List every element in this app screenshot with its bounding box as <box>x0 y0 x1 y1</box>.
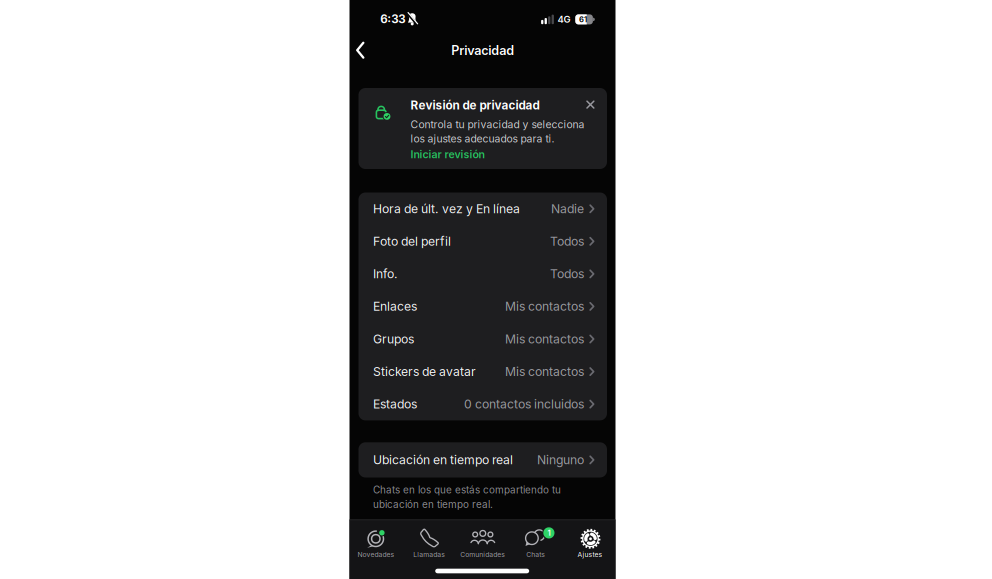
staticText: 61 <box>579 15 587 24</box>
button[interactable]: Grupos <box>358 323 607 355</box>
staticText: 6:33 <box>380 12 405 26</box>
button[interactable]: Llamadas <box>403 524 456 568</box>
staticText: Todos <box>550 234 584 249</box>
button[interactable]: Foto del perfil <box>358 225 607 258</box>
staticText: Grupos <box>373 332 414 346</box>
staticText: 1 <box>547 529 550 538</box>
staticText: Mis contactos <box>505 332 584 346</box>
button[interactable]: Enlaces <box>358 290 607 323</box>
staticText: Privacidad <box>451 43 514 58</box>
button[interactable]: Comunidades <box>456 524 509 568</box>
staticText: Ubicación en tiempo real <box>373 452 513 467</box>
staticText: Iniciar revisión <box>410 148 484 161</box>
staticText: Mis contactos <box>505 299 584 314</box>
staticText: Estados <box>373 397 417 411</box>
staticText: Chats en los que estás compartiendo tu <box>373 484 561 496</box>
staticText: Llamadas <box>413 550 445 559</box>
staticText: 4G <box>557 14 570 25</box>
staticText: Nadie <box>551 201 584 216</box>
staticText: Stickers de avatar <box>373 364 476 379</box>
staticText: Novedades <box>358 550 395 559</box>
staticText: 0 contactos incluidos <box>464 397 584 411</box>
staticText: Foto del perfil <box>373 234 451 249</box>
staticText: Chats <box>526 550 545 559</box>
staticText: Todos <box>550 266 584 281</box>
staticText: Hora de últ. vez y En línea <box>373 201 520 216</box>
button[interactable]: Cerrar <box>578 93 602 117</box>
staticText: Controla tu privacidad y selecciona <box>410 118 584 131</box>
button[interactable]: Novedades <box>350 524 403 568</box>
staticText: Revisión de privacidad <box>410 98 539 112</box>
button[interactable]: Iniciar revisión <box>410 148 610 161</box>
staticText: Mis contactos <box>505 364 584 379</box>
button[interactable]: 1 <box>509 524 562 568</box>
staticText: los ajustes adecuados para ti. <box>410 132 554 145</box>
button[interactable]: Atrás <box>348 35 372 65</box>
button[interactable]: Stickers de avatar <box>358 355 607 388</box>
button[interactable]: Ubicación en tiempo real <box>358 444 607 476</box>
button[interactable]: Hora de últ. vez y En línea <box>358 192 607 225</box>
staticText: Ajustes <box>578 550 603 559</box>
staticText: Enlaces <box>373 299 417 314</box>
button[interactable]: Estados <box>358 388 607 420</box>
staticText: ubicación en tiempo real. <box>373 498 493 510</box>
button[interactable]: Ajustes <box>564 524 617 568</box>
button[interactable]: Info. <box>358 258 607 290</box>
staticText: Comunidades <box>460 550 505 559</box>
staticText: Ninguno <box>537 452 584 467</box>
staticText: Info. <box>373 266 398 281</box>
